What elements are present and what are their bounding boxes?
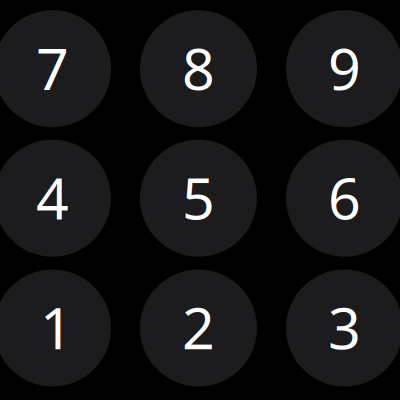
button[interactable]: 5 (140, 140, 257, 257)
staticText: 8 (182, 30, 215, 106)
button[interactable]: 6 (286, 140, 400, 257)
staticText: 5 (182, 159, 215, 235)
button[interactable]: 4 (0, 140, 111, 257)
button[interactable]: 9 (286, 10, 400, 127)
staticText: 7 (36, 30, 69, 106)
button[interactable]: 1 (0, 269, 111, 386)
staticText: 3 (328, 289, 361, 365)
button[interactable]: 2 (140, 269, 257, 386)
staticText: 1 (40, 289, 73, 365)
button[interactable]: 8 (140, 10, 257, 127)
staticText: 6 (328, 159, 361, 235)
staticText: 4 (36, 159, 69, 235)
staticText: 9 (328, 30, 361, 106)
button[interactable]: 3 (286, 269, 400, 386)
button[interactable]: 7 (0, 10, 111, 127)
staticText: 2 (182, 289, 215, 365)
